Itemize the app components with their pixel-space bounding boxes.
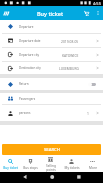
button[interactable]: Buy ticket (0, 156, 20, 172)
staticText: Return (19, 82, 29, 86)
button[interactable]: More (82, 156, 103, 172)
staticText: Selling points (46, 164, 56, 172)
button[interactable]: My tickets (61, 156, 82, 172)
button[interactable]: Return trip toggle (86, 79, 98, 89)
staticText: My tickets (64, 166, 80, 170)
staticText: Departure city (19, 53, 40, 57)
staticText: Buy ticket (37, 10, 64, 17)
button[interactable]: Departure city (0, 48, 103, 61)
button[interactable]: persons (0, 105, 103, 121)
staticText: Departure date (19, 39, 41, 43)
button[interactable]: More options (92, 6, 103, 20)
button[interactable]: Navigation menu (0, 6, 11, 20)
staticText: persons (19, 111, 31, 115)
button[interactable]: Shopping cart (80, 6, 92, 20)
button[interactable]: Destination city (0, 62, 103, 74)
staticText: More (89, 166, 97, 170)
staticText: LUXEMBURG (59, 66, 79, 70)
button[interactable]: Return (0, 78, 103, 90)
button[interactable]: Departure date (0, 34, 103, 47)
staticText: 1 (87, 111, 89, 115)
staticText: Departure (19, 25, 34, 29)
staticText: SEARCH (44, 147, 60, 153)
button[interactable]: Selling points (40, 156, 61, 172)
staticText: 2019-08-05 (61, 39, 79, 43)
staticText: Passengers (19, 97, 36, 101)
staticText: 4:55 (93, 1, 101, 6)
button[interactable]: SEARCH (2, 144, 101, 155)
button[interactable]: Bus stops (20, 156, 40, 172)
staticText: Buy ticket (3, 166, 18, 170)
staticText: KATOWICE (62, 53, 79, 57)
staticText: Destination city (19, 66, 41, 70)
button[interactable]: Departure (0, 20, 103, 33)
staticText: Bus stops (23, 166, 38, 170)
button[interactable]: Passengers (0, 93, 103, 104)
